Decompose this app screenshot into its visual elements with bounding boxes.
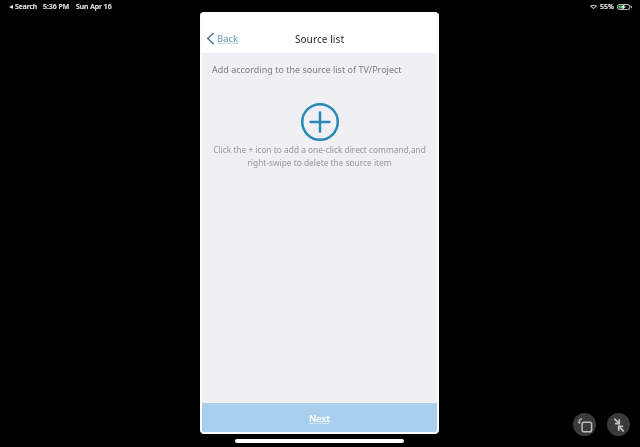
staticText: Back	[217, 32, 239, 45]
button[interactable]: Back	[207, 32, 239, 45]
button[interactable]: Add source	[300, 102, 340, 142]
staticText: 5:36 PM	[43, 2, 70, 11]
staticText: 55%	[600, 2, 614, 11]
staticText: Source list	[295, 32, 345, 46]
staticText: Add according to the source list of TV/P…	[212, 63, 402, 75]
button[interactable]: Minimize window	[607, 413, 630, 436]
staticText: Search	[15, 2, 38, 11]
staticText: Click the + icon to add a one-click dire…	[200, 144, 439, 168]
staticText: Next	[309, 412, 330, 425]
button[interactable]: Next	[200, 403, 439, 434]
button[interactable]: Resize window	[573, 413, 596, 436]
staticText: Sun Apr 16	[76, 2, 112, 11]
